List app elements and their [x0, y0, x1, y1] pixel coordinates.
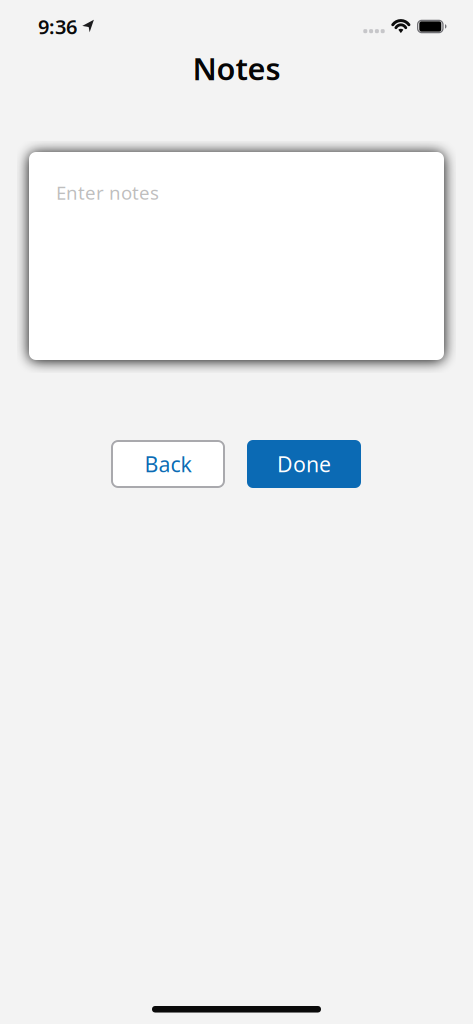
staticText: Done [277, 450, 331, 478]
staticText: Back [144, 450, 191, 478]
button[interactable]: Enter notes [29, 152, 444, 360]
button[interactable]: Done [247, 440, 361, 488]
staticText: Notes [192, 48, 280, 89]
staticText: Enter notes [56, 180, 159, 205]
staticText: 9:36 [38, 13, 77, 40]
button[interactable]: Back [111, 440, 225, 488]
